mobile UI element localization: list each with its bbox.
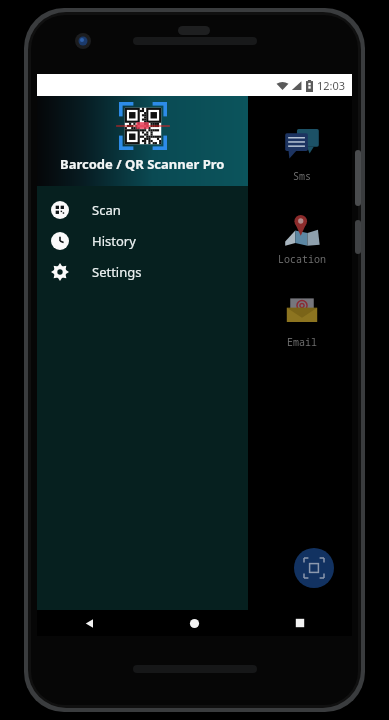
staticText: Scan — [92, 201, 121, 219]
staticText: Barcode / QR Scanner Pro — [60, 155, 225, 173]
other: Sms — [281, 124, 323, 166]
staticText: Location — [278, 252, 326, 266]
button[interactable]: Home — [142, 610, 247, 636]
staticText: Email — [287, 335, 317, 349]
button[interactable]: Settings — [37, 256, 248, 287]
staticText: Settings — [92, 263, 142, 281]
other: Email — [281, 290, 323, 332]
staticText: History — [92, 232, 136, 250]
button[interactable]: Email — [268, 290, 336, 349]
button[interactable]: History — [37, 225, 248, 256]
staticText: Sms — [293, 169, 311, 183]
button[interactable]: Scan — [37, 194, 248, 225]
button[interactable]: Sms — [268, 124, 336, 183]
button[interactable]: Recent apps — [247, 610, 352, 636]
button[interactable]: Location — [268, 207, 336, 266]
button[interactable]: Scan barcode — [294, 548, 334, 588]
staticText: 12:03 — [317, 78, 346, 93]
other: Location — [281, 207, 323, 249]
button[interactable]: Back — [37, 610, 142, 636]
